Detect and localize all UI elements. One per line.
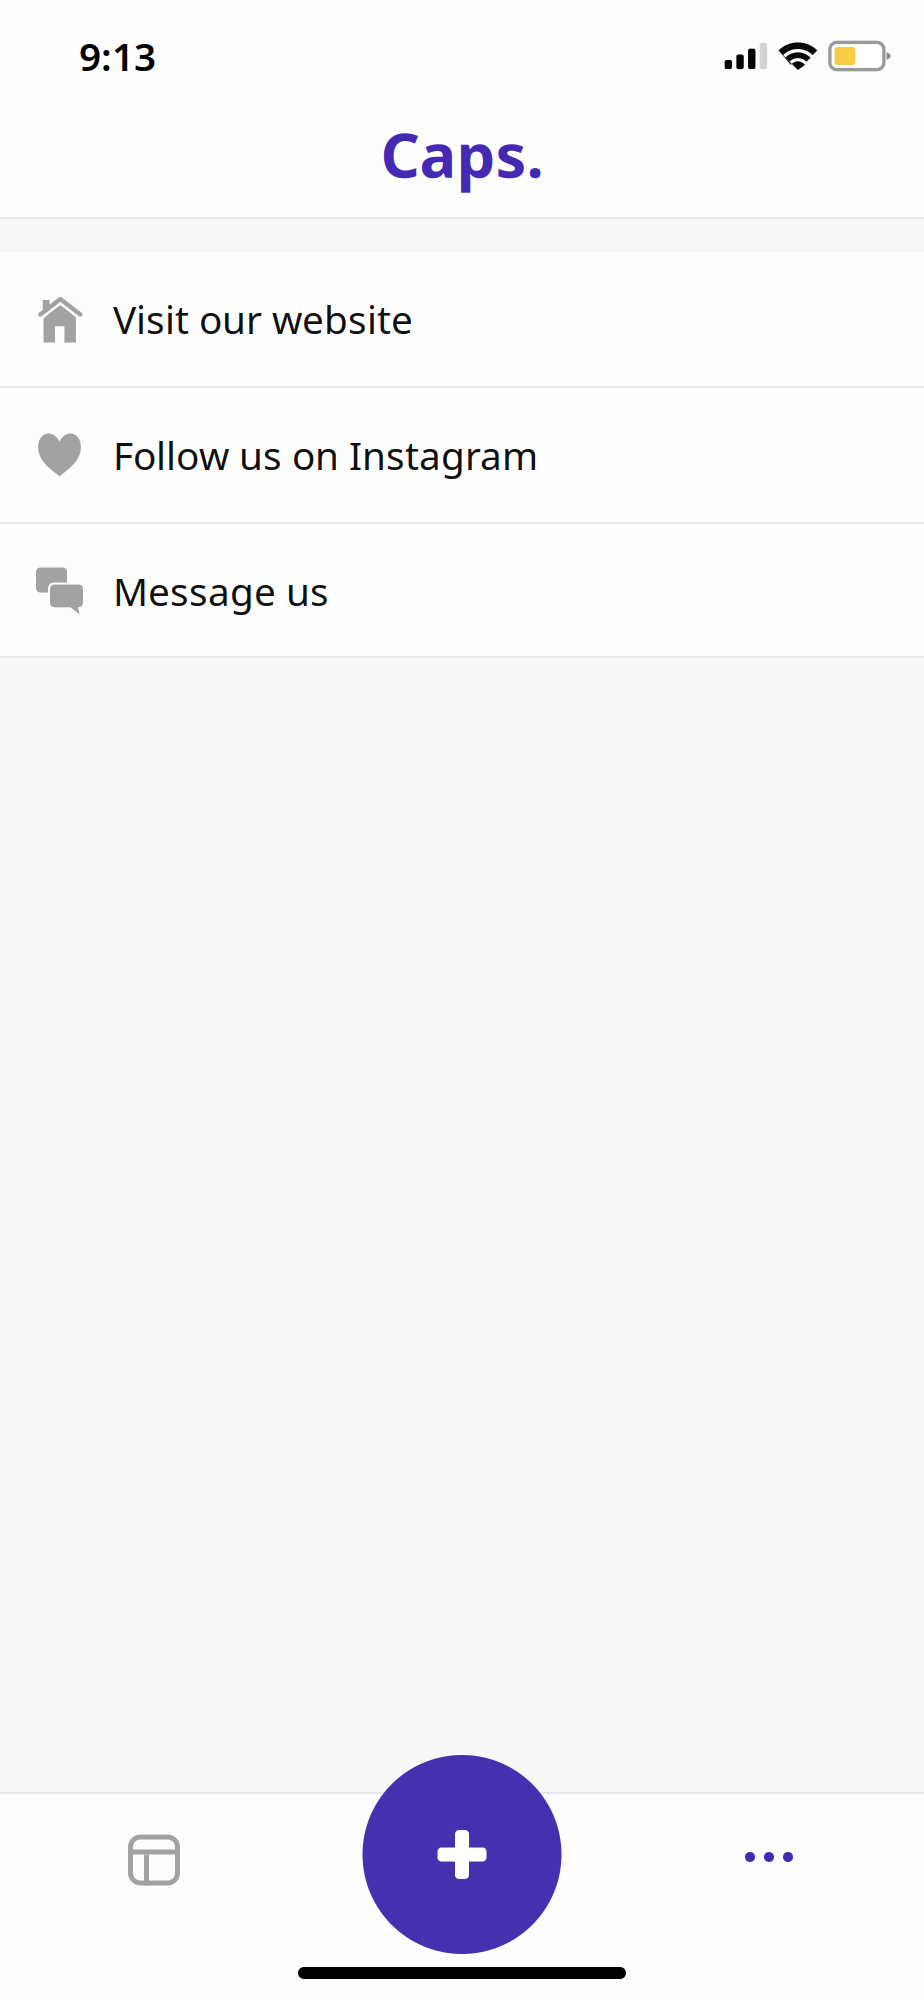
button[interactable]: Message us: [0, 524, 924, 658]
button[interactable]: Add: [362, 1755, 561, 1954]
staticText: 9:13: [79, 30, 156, 82]
staticText: Message us: [113, 565, 329, 617]
staticText: Visit our website: [113, 293, 413, 345]
staticText: Follow us on Instagram: [113, 429, 538, 481]
button[interactable]: Visit our website: [0, 252, 924, 386]
button[interactable]: Dashboard: [84, 1794, 224, 1920]
button[interactable]: More: [699, 1794, 839, 1920]
staticText: Caps.: [380, 113, 543, 195]
button[interactable]: Follow us on Instagram: [0, 388, 924, 522]
